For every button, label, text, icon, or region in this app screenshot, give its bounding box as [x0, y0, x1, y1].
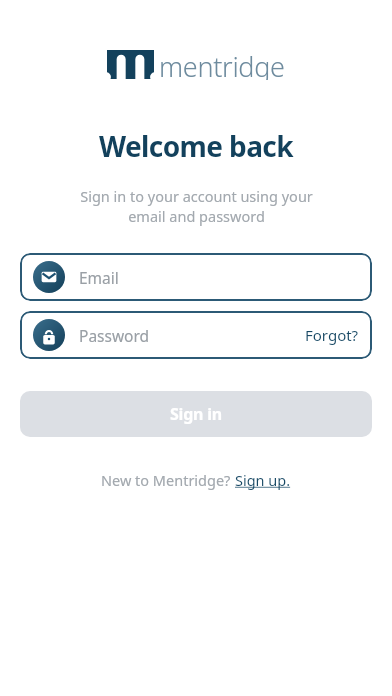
staticText: Sign in to your account using your email…: [80, 186, 313, 227]
staticText: Sign in: [170, 403, 223, 425]
staticText: Forgot?: [305, 325, 359, 345]
button[interactable]: Email: [20, 253, 372, 301]
button[interactable]: Password: [20, 311, 372, 359]
staticText: mentridge: [159, 48, 285, 80]
staticText: Welcome back: [99, 127, 293, 165]
other: Password: [33, 319, 65, 351]
button[interactable]: Sign up.: [235, 470, 291, 490]
other: Email: [33, 261, 65, 293]
staticText: Sign up.: [235, 470, 291, 490]
staticText: New to Mentridge?: [101, 470, 235, 490]
button[interactable]: Forgot?: [305, 325, 359, 345]
button[interactable]: Sign in: [20, 391, 372, 437]
staticText: Email: [79, 267, 359, 288]
staticText: Password: [79, 325, 305, 346]
